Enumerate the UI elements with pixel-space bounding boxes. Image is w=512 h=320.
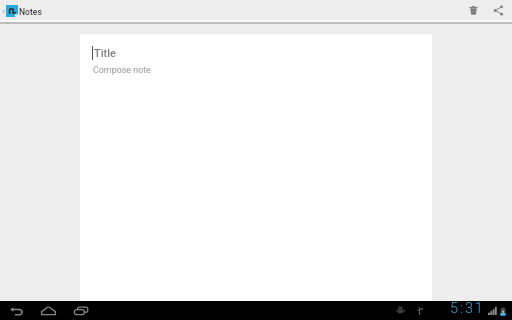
staticText: 5:31 [450,300,485,317]
staticText: Title [94,47,116,60]
button[interactable]: Back [5,301,28,320]
staticText: Notes [19,7,42,17]
button[interactable]: Home [37,301,60,320]
staticText: Compose note [93,65,151,75]
button[interactable]: Delete [462,0,484,21]
button[interactable]: Notes [0,5,46,17]
button[interactable]: Recents [69,301,92,320]
button[interactable]: Share [487,0,509,21]
